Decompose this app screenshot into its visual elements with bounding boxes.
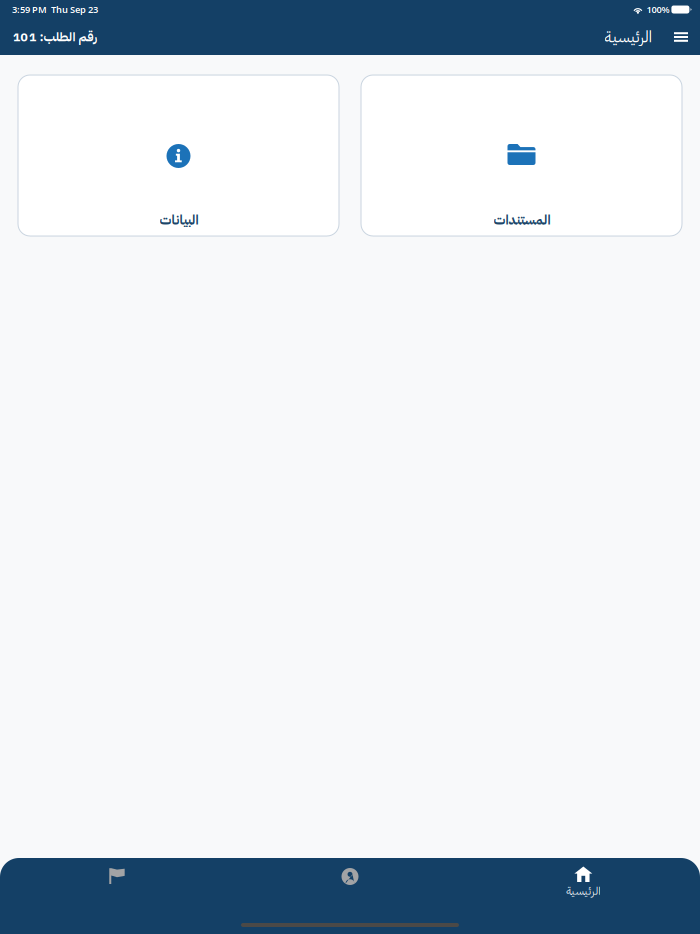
button[interactable]: Profile [233,858,467,898]
button[interactable]: المستندات [361,75,682,236]
staticText: المستندات [493,210,550,230]
staticText: 100% [646,3,669,16]
button[interactable]: Reports [0,858,233,898]
staticText: رقم الطلب: 101 [12,27,97,46]
staticText: الرئيسية [604,25,652,49]
staticText: الرئيسية [566,882,601,899]
staticText: Thu Sep 23 [47,3,98,16]
button[interactable]: Menu [652,32,688,42]
button[interactable]: البيانات [18,75,339,236]
staticText: 3:59 PM [12,3,47,16]
staticText: البيانات [159,210,198,230]
button[interactable]: الرئيسية [467,858,700,898]
